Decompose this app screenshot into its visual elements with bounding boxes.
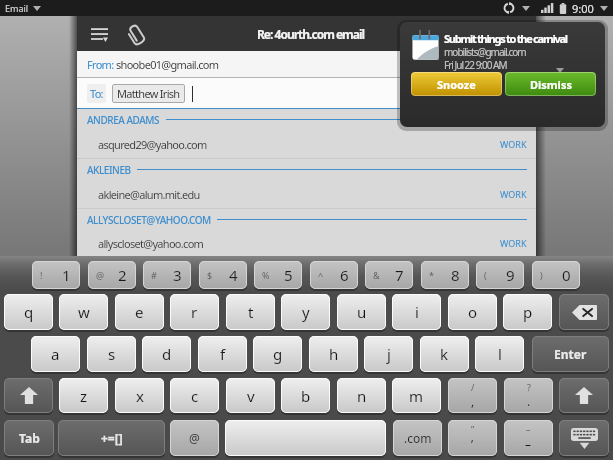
staticText: x bbox=[136, 386, 144, 406]
button[interactable]: n bbox=[337, 378, 386, 413]
button[interactable]: Snooze bbox=[411, 72, 502, 96]
button[interactable]: f bbox=[198, 336, 247, 372]
button[interactable]: Backspace bbox=[559, 294, 609, 330]
staticText: AKLEINEB bbox=[87, 163, 131, 177]
staticText: o bbox=[468, 302, 478, 322]
button[interactable]: AKLEINEB bbox=[77, 159, 536, 209]
staticText: l bbox=[498, 344, 502, 364]
staticText: * bbox=[429, 269, 434, 281]
button[interactable]: k bbox=[420, 336, 469, 372]
button[interactable]: ) bbox=[532, 261, 580, 289]
button[interactable]: Sync bbox=[503, 2, 515, 14]
staticText: Tab bbox=[19, 430, 40, 446]
button[interactable]: Shift bbox=[559, 378, 609, 413]
button[interactable]: w bbox=[59, 294, 108, 330]
button[interactable]: e bbox=[115, 294, 164, 330]
button[interactable]: Email bbox=[5, 0, 41, 16]
button[interactable]: +=[] bbox=[58, 420, 165, 456]
button[interactable]: / bbox=[448, 378, 497, 413]
staticText: WORK bbox=[500, 237, 527, 249]
button[interactable]: ( bbox=[476, 261, 524, 289]
button[interactable]: % bbox=[254, 261, 302, 289]
button[interactable]: s bbox=[87, 336, 136, 372]
staticText: ALLYSCLOSET@YAHOO.COM bbox=[87, 213, 211, 227]
staticText: & bbox=[373, 269, 380, 281]
staticText: . bbox=[527, 393, 531, 409]
button[interactable]: @ bbox=[88, 261, 136, 289]
staticText: y bbox=[302, 302, 310, 322]
staticText: q bbox=[24, 302, 34, 322]
staticText: ? bbox=[527, 381, 531, 393]
button[interactable]: q bbox=[4, 294, 53, 330]
button[interactable]: ? bbox=[504, 378, 553, 413]
button[interactable]: a bbox=[31, 336, 80, 372]
button[interactable]: ^ bbox=[310, 261, 358, 289]
staticText: Matthew Irish bbox=[117, 86, 180, 101]
button[interactable]: & bbox=[365, 261, 413, 289]
button[interactable]: d bbox=[142, 336, 191, 372]
button[interactable]: Dismiss bbox=[505, 72, 596, 96]
button[interactable]: Space bbox=[225, 420, 386, 456]
staticText: e bbox=[135, 302, 144, 322]
button[interactable]: Matthew Irish bbox=[117, 84, 180, 103]
button[interactable]: Attach bbox=[120, 18, 152, 50]
button[interactable]: ANDREA ADAMS bbox=[77, 109, 536, 159]
button[interactable]: # bbox=[143, 261, 191, 289]
button[interactable]: Shift bbox=[4, 378, 53, 413]
staticText: WORK bbox=[500, 188, 527, 200]
button[interactable]: u bbox=[337, 294, 386, 330]
staticText: f bbox=[220, 344, 226, 364]
button[interactable]: r bbox=[170, 294, 219, 330]
staticText: z bbox=[80, 386, 88, 406]
button[interactable]: t bbox=[226, 294, 275, 330]
staticText: a bbox=[51, 344, 60, 364]
button[interactable]: @ bbox=[170, 420, 219, 456]
staticText: n bbox=[357, 386, 367, 406]
button[interactable]: Send bbox=[488, 26, 514, 41]
button[interactable]: ALLYSCLOSET@YAHOO.COM bbox=[77, 209, 536, 256]
staticText: 9:00 bbox=[572, 1, 594, 16]
button[interactable]: p bbox=[503, 294, 552, 330]
button[interactable]: Menu bbox=[83, 18, 115, 50]
button[interactable]: i bbox=[392, 294, 441, 330]
staticText: Dismiss bbox=[530, 77, 572, 92]
staticText: Fri Jul 22 9:00 AM bbox=[444, 58, 507, 72]
button[interactable]: ” bbox=[448, 420, 497, 456]
staticText: j bbox=[387, 344, 391, 364]
staticText: – bbox=[525, 436, 532, 452]
button[interactable]: h bbox=[309, 336, 358, 372]
button[interactable]: Expand bbox=[550, 60, 570, 80]
button[interactable]: x bbox=[115, 378, 164, 413]
button[interactable]: b bbox=[281, 378, 330, 413]
button[interactable]: y bbox=[281, 294, 330, 330]
button[interactable]: * bbox=[421, 261, 469, 289]
staticText: .com bbox=[404, 430, 432, 446]
button[interactable]: ! bbox=[32, 261, 80, 289]
staticText: ) bbox=[540, 269, 543, 281]
staticText: @ bbox=[96, 269, 105, 281]
button[interactable]: – bbox=[504, 420, 553, 456]
button[interactable]: z bbox=[59, 378, 108, 413]
button[interactable]: m bbox=[392, 378, 441, 413]
staticText: p bbox=[523, 302, 533, 322]
button[interactable]: j bbox=[364, 336, 413, 372]
button[interactable]: c bbox=[170, 378, 219, 413]
staticText: Send bbox=[488, 26, 514, 41]
staticText: +=[] bbox=[101, 430, 123, 446]
button[interactable]: $ bbox=[199, 261, 247, 289]
button[interactable]: l bbox=[475, 336, 524, 372]
staticText: Email bbox=[5, 2, 29, 14]
button[interactable]: .com bbox=[393, 420, 442, 456]
staticText: Enter bbox=[554, 346, 587, 362]
button[interactable]: o bbox=[448, 294, 497, 330]
staticText: shoobe01@gmail.com bbox=[116, 57, 219, 72]
staticText: i bbox=[415, 302, 419, 322]
staticText: ’ bbox=[471, 436, 474, 452]
staticText: 1 bbox=[62, 265, 71, 285]
button[interactable]: v bbox=[226, 378, 275, 413]
button[interactable]: Enter bbox=[532, 336, 609, 372]
staticText: h bbox=[329, 344, 339, 364]
button[interactable]: Hide keyboard bbox=[559, 420, 609, 456]
button[interactable]: Tab bbox=[4, 420, 54, 456]
button[interactable]: g bbox=[253, 336, 302, 372]
